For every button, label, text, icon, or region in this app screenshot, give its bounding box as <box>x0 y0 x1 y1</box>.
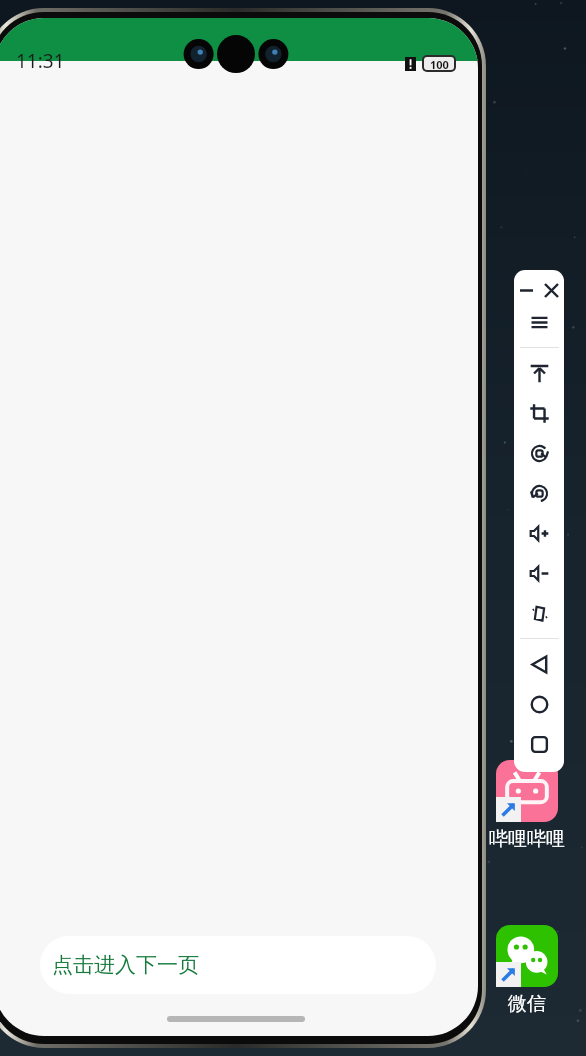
button[interactable]: Recent apps <box>514 724 564 764</box>
button[interactable]: 点击进入下一页 <box>40 936 436 994</box>
staticText: 微信 <box>508 992 546 1016</box>
staticText: 11:31 <box>16 48 65 74</box>
button[interactable]: Menu <box>514 302 564 342</box>
button[interactable]: Volume down <box>514 553 564 593</box>
staticText: 点击进入下一页 <box>52 952 199 978</box>
button[interactable]: Crop screenshot <box>514 393 564 433</box>
staticText: 哔哩哔哩 <box>489 827 565 851</box>
button[interactable]: Home <box>514 684 564 724</box>
button[interactable]: Minimize <box>514 278 539 302</box>
button[interactable]: Rotate right <box>514 473 564 513</box>
button[interactable]: Shake device <box>514 593 564 633</box>
staticText: 100 <box>430 57 449 70</box>
button[interactable]: 微信 <box>488 925 566 1016</box>
button[interactable]: Volume up <box>514 513 564 553</box>
button[interactable]: Rotate left <box>514 433 564 473</box>
button[interactable]: Close <box>539 278 564 302</box>
button[interactable]: 哔哩哔哩 <box>488 760 566 851</box>
button[interactable]: Scroll to top <box>514 353 564 393</box>
button[interactable]: Back <box>514 644 564 684</box>
